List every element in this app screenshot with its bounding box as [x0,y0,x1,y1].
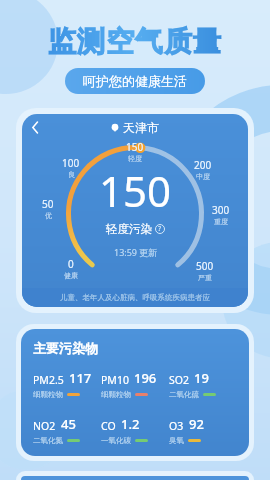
staticText: 呵护您的健康生活 [83,73,187,89]
staticText: 严重 [198,273,212,282]
staticText: 优 [45,211,52,220]
staticText: 轻度污染 [106,222,152,236]
staticText: PM10 [101,373,129,387]
staticText: 19 [194,369,209,387]
staticText: 100 [62,156,80,170]
staticText: 监测空气质量 [0,24,270,59]
staticText: 50 [42,197,54,211]
staticText: 0 [68,257,74,271]
staticText: 二氧化硫 [169,390,199,399]
button[interactable]: CO [101,415,169,445]
staticText: 300 [212,203,230,217]
staticText: 良 [68,170,75,179]
button[interactable] [21,476,249,480]
button[interactable]: 呵护您的健康生活 [65,68,205,94]
staticText: 健康 [64,271,78,280]
staticText: SO2 [169,373,189,387]
button[interactable]: NO2 [33,415,101,445]
staticText: 500 [196,259,214,273]
staticText: 儿童、老年人及心脏病、呼吸系统疾病患者应 [60,293,210,302]
staticText: ? [158,224,162,234]
staticText: 150 [126,140,144,154]
staticText: 150 [99,162,172,219]
staticText: 92 [189,415,204,433]
staticText: 细颗粒物 [101,390,131,399]
staticText: 二氧化氮 [33,436,63,445]
staticText: 45 [61,415,76,433]
button[interactable]: PM10 [101,369,169,399]
staticText: 117 [69,369,92,387]
button[interactable]: SO2 [169,369,237,399]
staticText: 一氧化碳 [101,436,131,445]
staticText: NO2 [33,419,56,433]
staticText: 天津市 [123,120,159,135]
button[interactable]: Back [22,114,48,140]
staticText: 臭氧 [169,436,184,445]
staticText: 1.2 [121,415,140,433]
staticText: 196 [134,369,157,387]
staticText: O3 [169,419,184,433]
staticText: CO [101,419,116,433]
button[interactable]: PM2.5 [33,369,101,399]
staticText: 轻度 [128,154,142,163]
staticText: 主要污染物 [33,340,98,356]
staticText: 重度 [214,217,228,226]
staticText: 200 [194,158,212,172]
button[interactable]: O3 [169,415,237,445]
staticText: 中度 [196,172,210,181]
staticText: 细颗粒物 [33,390,63,399]
staticText: PM2.5 [33,373,64,387]
button[interactable]: Info [155,224,165,234]
staticText: 13:59 更新 [114,246,158,258]
